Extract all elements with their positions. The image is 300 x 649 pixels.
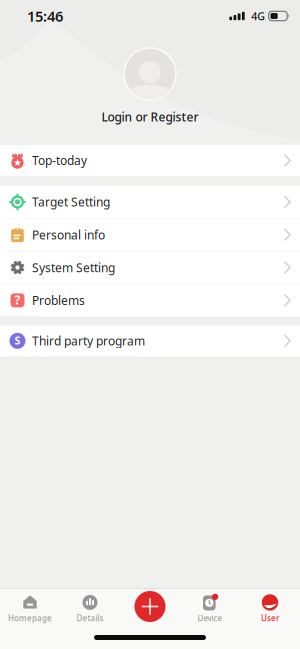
staticText: Device: [197, 613, 222, 623]
staticText: Third party program: [32, 333, 145, 349]
button[interactable]: Device: [180, 592, 240, 626]
button[interactable]: User: [240, 592, 300, 626]
button[interactable]: System Setting: [0, 251, 300, 283]
staticText: Top-today: [32, 152, 87, 168]
staticText: Problems: [32, 292, 85, 308]
button[interactable]: Homepage: [0, 592, 60, 626]
staticText: System Setting: [32, 260, 115, 275]
staticText: 15:46: [27, 6, 63, 26]
button[interactable]: Personal info: [0, 219, 300, 251]
staticText: 4G: [251, 9, 265, 23]
button[interactable]: Top-today: [0, 145, 300, 176]
staticText: User: [261, 613, 279, 623]
button[interactable]: S: [0, 325, 300, 356]
staticText: Homepage: [8, 613, 52, 623]
button[interactable]: Target Setting: [0, 186, 300, 218]
staticText: Details: [76, 613, 103, 623]
staticText: ?: [14, 292, 20, 308]
button[interactable]: ?: [0, 284, 300, 316]
staticText: Target Setting: [32, 194, 110, 210]
staticText: Personal info: [32, 227, 105, 243]
button[interactable]: Profile photo: [124, 48, 176, 100]
button[interactable]: Add: [120, 592, 180, 626]
button[interactable]: Details: [60, 592, 120, 626]
button[interactable]: Login or Register: [101, 109, 198, 125]
staticText: Login or Register: [101, 109, 198, 125]
staticText: S: [14, 333, 20, 347]
